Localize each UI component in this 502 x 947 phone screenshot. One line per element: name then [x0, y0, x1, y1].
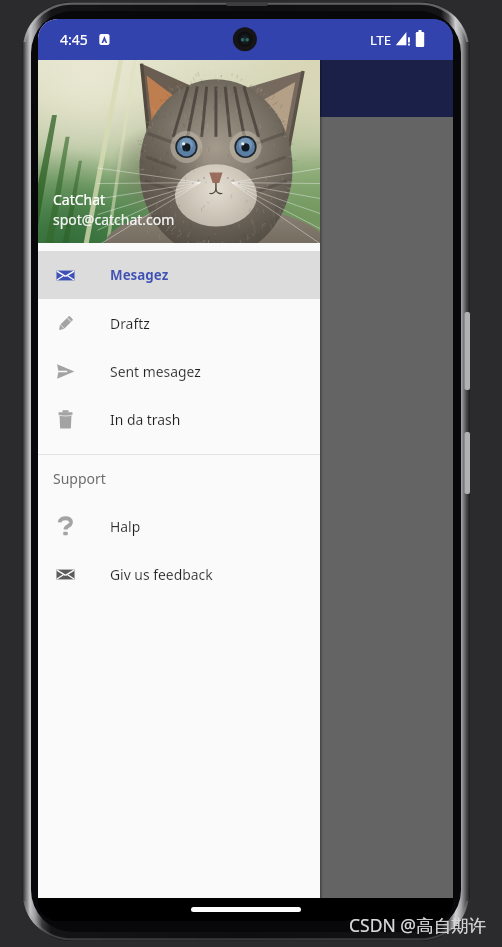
button[interactable]: CatChat [38, 60, 320, 243]
button[interactable]: Sent mesagez [38, 347, 320, 395]
button[interactable]: Draftz [38, 299, 320, 347]
staticText: LTE [370, 31, 392, 49]
staticText: CSDN @高自期许 [349, 913, 487, 937]
staticText: Giv us feedback [110, 565, 213, 584]
button[interactable]: In da trash [38, 395, 320, 443]
staticText: Mesagez [110, 266, 169, 284]
staticText: Halp [110, 517, 141, 536]
other: Home gesture [191, 907, 301, 912]
button[interactable]: Halp [38, 502, 320, 550]
staticText: spot@catchat.com [53, 210, 175, 229]
staticText: Sent mesagez [110, 362, 201, 381]
staticText: Draftz [110, 314, 150, 333]
staticText: CatChat [53, 190, 106, 209]
staticText: Support [53, 469, 106, 488]
button[interactable]: Giv us feedback [38, 550, 320, 598]
staticText: In da trash [110, 410, 181, 429]
button[interactable]: Mesagez [38, 251, 320, 299]
staticText: 4:45 [60, 30, 88, 49]
